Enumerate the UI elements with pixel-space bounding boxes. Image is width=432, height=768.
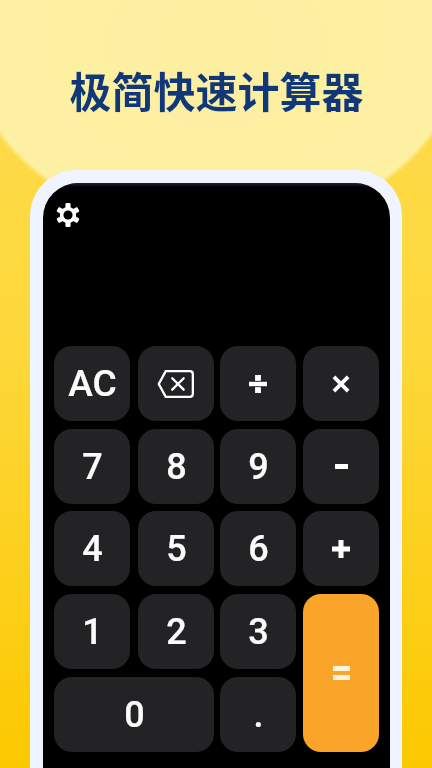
staticText: 3 (248, 611, 269, 653)
staticText: 8 (166, 446, 187, 488)
button[interactable]: 2 (138, 594, 214, 669)
button[interactable]: Backspace (138, 346, 214, 421)
button[interactable]: 4 (54, 511, 130, 586)
staticText: 0 (124, 694, 145, 736)
button[interactable]: 0 (54, 677, 214, 752)
button[interactable]: Settings (50, 197, 86, 233)
staticText: 极简快速计算器 (69, 59, 364, 120)
staticText: 9 (248, 446, 269, 488)
button[interactable]: All clear (54, 346, 130, 421)
staticText: 4 (82, 528, 103, 570)
button[interactable]: 7 (54, 429, 130, 504)
staticText: 7 (82, 446, 103, 488)
button[interactable]: Plus (303, 511, 379, 586)
staticText: 1 (82, 611, 103, 653)
button[interactable]: . (220, 677, 296, 752)
button[interactable]: Minus (303, 429, 379, 504)
staticText: 2 (166, 611, 187, 653)
button[interactable]: 6 (220, 511, 296, 586)
button[interactable]: Divide (220, 346, 296, 421)
button[interactable]: Multiply (303, 346, 379, 421)
button[interactable]: Equals (303, 594, 379, 752)
button[interactable]: 5 (138, 511, 214, 586)
staticText: 6 (248, 528, 269, 570)
button[interactable]: 1 (54, 594, 130, 669)
staticText: 5 (166, 528, 187, 570)
button[interactable]: 9 (220, 429, 296, 504)
staticText: AC (68, 362, 117, 405)
button[interactable]: 8 (138, 429, 214, 504)
staticText: . (253, 694, 264, 736)
button[interactable]: 3 (220, 594, 296, 669)
